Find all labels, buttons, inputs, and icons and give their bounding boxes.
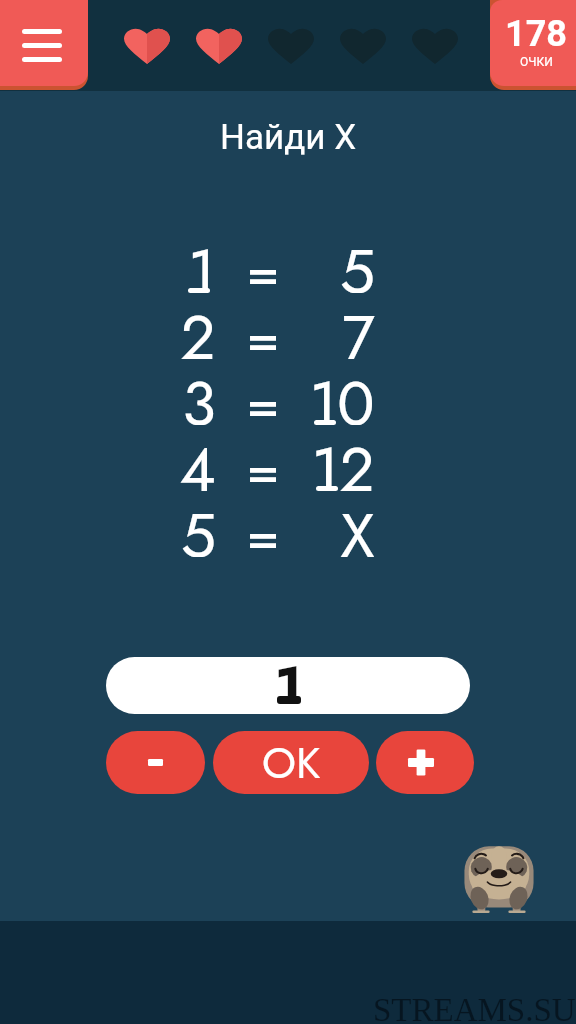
staticText: 1 — [275, 657, 302, 704]
staticText: 5 — [340, 227, 375, 293]
staticText: X — [340, 491, 375, 557]
staticText: = — [246, 227, 276, 293]
staticText: 3 — [182, 359, 216, 425]
button[interactable]: 1 — [106, 657, 470, 714]
staticText: 4 — [179, 425, 216, 491]
staticText: = — [246, 359, 276, 425]
staticText: 5 — [181, 491, 216, 557]
staticText: 10 — [309, 359, 375, 425]
staticText: Найди X — [220, 117, 357, 158]
staticText: = — [246, 425, 276, 491]
staticText: 12 — [311, 425, 375, 491]
staticText: STREAMS.SU — [373, 992, 576, 1024]
staticText: OK — [262, 732, 321, 794]
staticText: 2 — [180, 293, 216, 359]
staticText: 7 — [342, 293, 375, 359]
staticText: ОЧКИ — [520, 55, 553, 69]
staticText: 1 — [188, 227, 216, 293]
staticText: = — [246, 491, 276, 557]
staticText: = — [246, 293, 276, 359]
staticText: 178 — [505, 13, 567, 55]
button[interactable]: Increase — [376, 731, 474, 794]
button[interactable]: Menu — [0, 0, 88, 90]
button[interactable]: Decrease — [106, 731, 205, 794]
button[interactable]: 178 — [490, 0, 576, 90]
button[interactable]: OK — [213, 731, 369, 794]
